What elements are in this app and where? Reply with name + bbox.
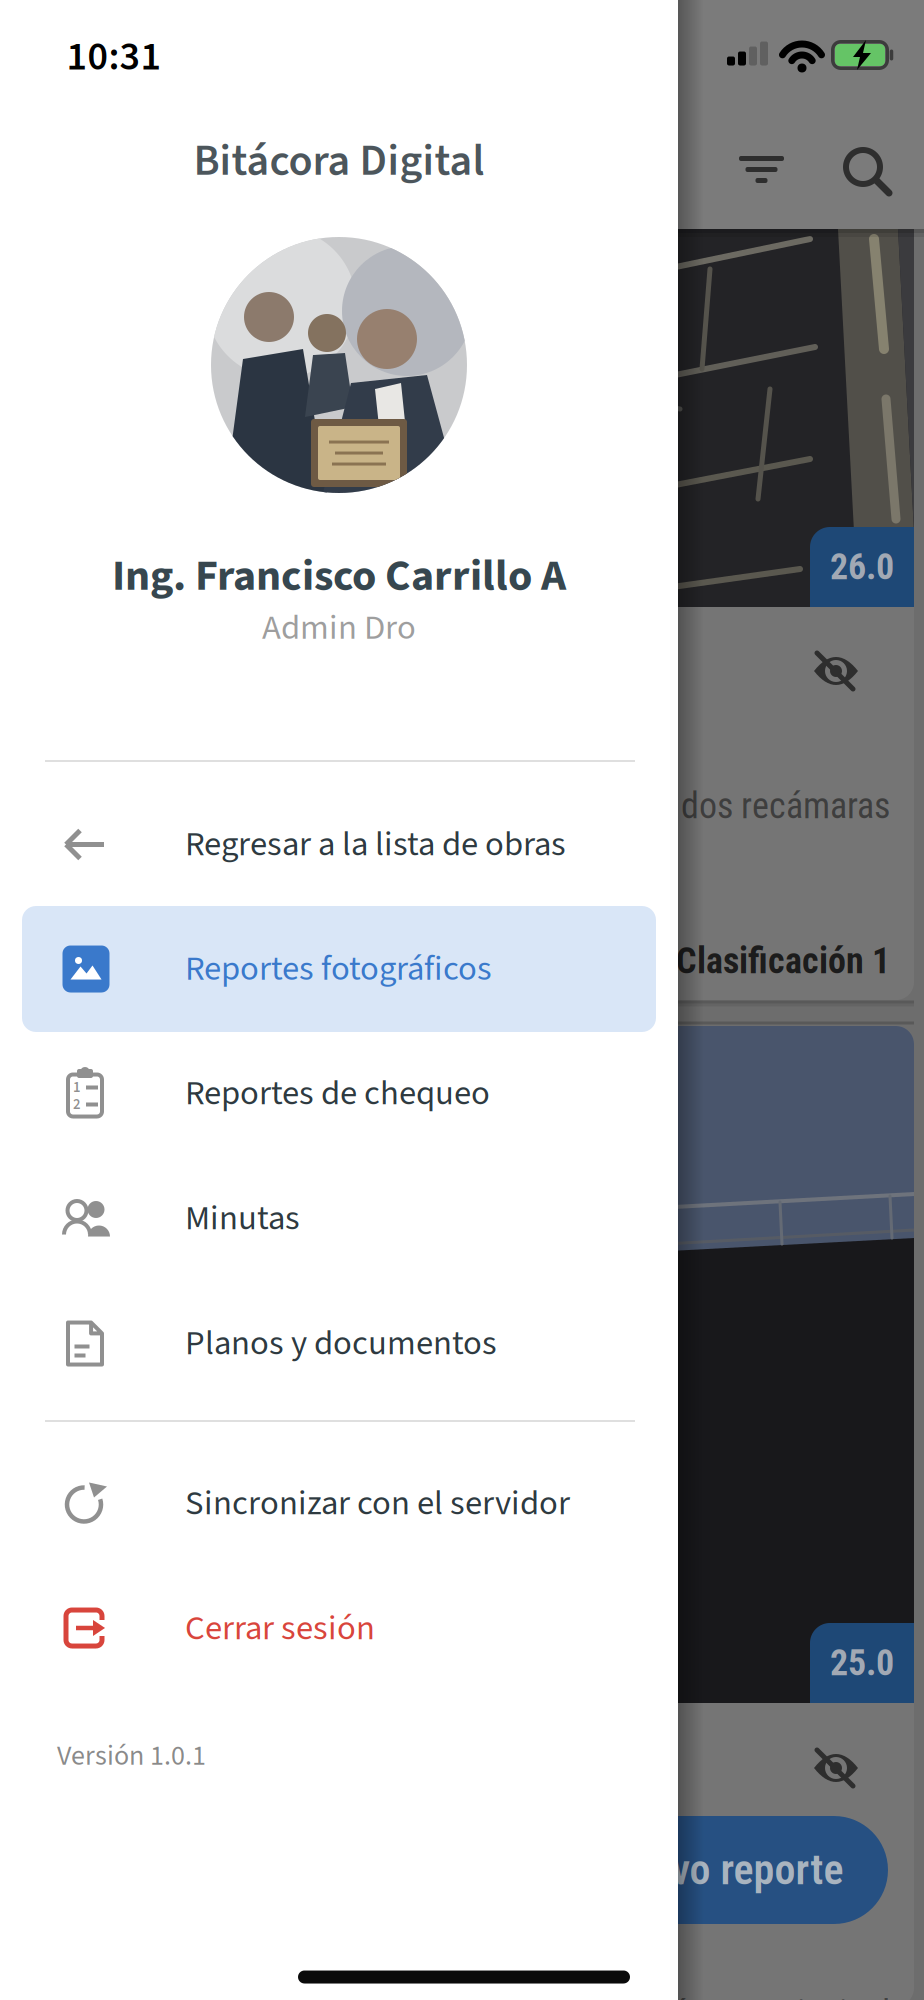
button[interactable]: Regresar a la lista de obras [22, 782, 656, 907]
staticText: Nuevo reporte [604, 1845, 843, 1895]
staticText: dos recámaras [681, 785, 890, 827]
button[interactable] [796, 636, 876, 706]
staticText: Planos y documentos [185, 1319, 497, 1367]
staticText: Regresar a la lista de obras [185, 820, 566, 868]
button[interactable]: Minutas [22, 1156, 656, 1281]
staticText: 1 [73, 1077, 81, 1098]
button[interactable]: 1 [22, 1031, 656, 1156]
button[interactable]: Cerrar sesión [22, 1566, 656, 1691]
staticText: 2 [73, 1094, 81, 1115]
staticText: Admin Dro [262, 604, 416, 652]
button[interactable] [824, 128, 912, 216]
staticText: Reportes fotográficos [185, 945, 492, 993]
button[interactable]: Nuevo reporte [552, 1816, 888, 1924]
staticText: Clasificación 1 [676, 940, 890, 982]
staticText: 10:31 [66, 29, 161, 85]
button[interactable]: Planos y documentos [22, 1281, 656, 1406]
staticText: Reportes de chequeo [185, 1069, 490, 1117]
button[interactable]: Reportes fotográficos [22, 906, 656, 1032]
staticText: Versión 1.0.1 [57, 1737, 206, 1775]
button[interactable] [796, 1733, 876, 1803]
button[interactable]: Sincronizar con el servidor [22, 1441, 656, 1566]
staticText: Sincronizar con el servidor [185, 1479, 570, 1527]
staticText: 25.0 [830, 1642, 894, 1684]
staticText: Bitácora Digital [193, 130, 484, 192]
button[interactable] [718, 126, 806, 214]
staticText: recámara principal [627, 1992, 890, 2000]
staticText: Ing. Francisco Carrillo A [112, 545, 566, 607]
staticText: Minutas [185, 1194, 300, 1242]
staticText: Cerrar sesión [185, 1604, 375, 1652]
staticText: 26.0 [830, 546, 894, 588]
